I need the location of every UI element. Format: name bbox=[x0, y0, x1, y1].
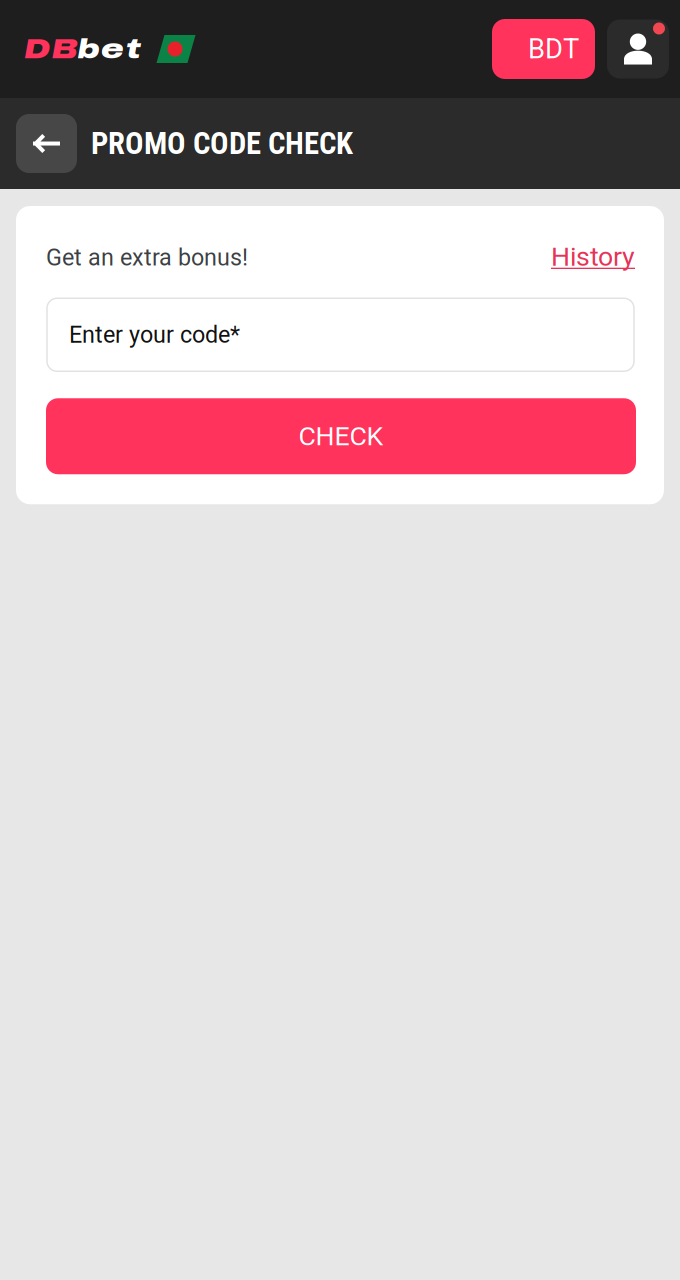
staticText: Get an extra bonus! bbox=[46, 244, 248, 271]
staticText: bet bbox=[77, 34, 140, 64]
button[interactable]: History bbox=[551, 243, 635, 274]
staticText: Enter your code* bbox=[69, 321, 240, 348]
button[interactable]: BDT bbox=[492, 19, 595, 79]
button[interactable]: Back bbox=[16, 114, 77, 173]
button[interactable]: Enter your code bbox=[47, 298, 634, 371]
button[interactable]: DBbet home bbox=[24, 34, 195, 64]
button[interactable]: CHECK bbox=[46, 398, 636, 474]
button[interactable]: Account bbox=[607, 19, 669, 78]
staticText: PROMO CODE CHECK bbox=[91, 125, 353, 161]
staticText: History bbox=[551, 241, 635, 272]
staticText: CHECK bbox=[298, 421, 383, 452]
staticText: BDT bbox=[528, 33, 579, 65]
staticText: DB bbox=[24, 34, 77, 64]
